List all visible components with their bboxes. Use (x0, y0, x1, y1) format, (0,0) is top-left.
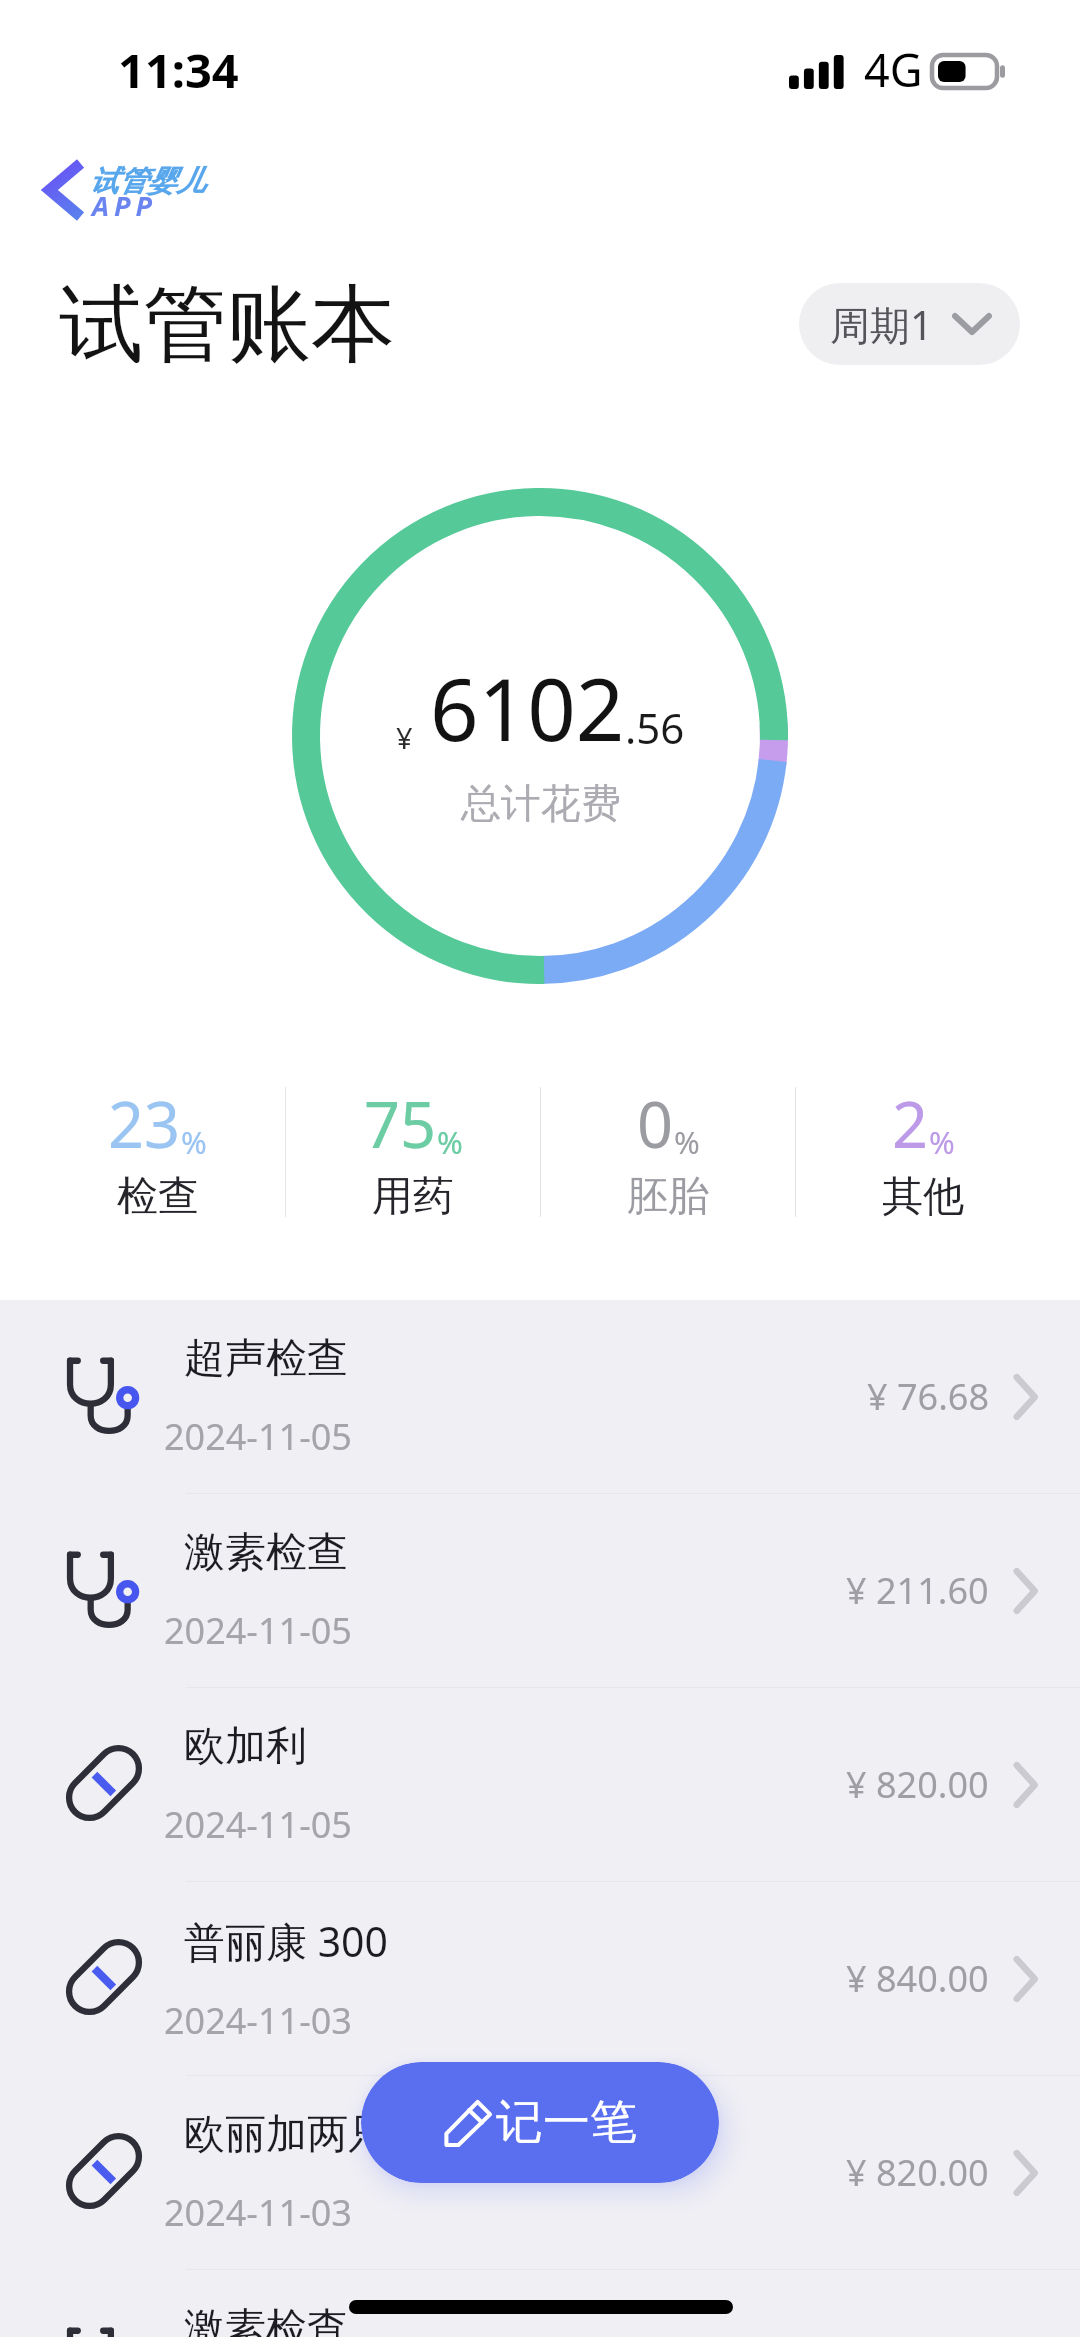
button[interactable]: 记一笔 (361, 2062, 719, 2183)
staticText: 其他 (882, 1171, 964, 1223)
button[interactable]: 0 (541, 1072, 795, 1232)
staticText: ¥ (396, 718, 413, 757)
staticText: 试管账本 (59, 272, 395, 378)
staticText: % (674, 1121, 700, 1163)
button[interactable]: 欧加利 (0, 1688, 1080, 1881)
button[interactable]: 欧丽加两只 (0, 2076, 1080, 2269)
staticText: 2024-11-05 (164, 1412, 352, 1461)
staticText: 2 (892, 1081, 929, 1167)
staticText: 欧丽加两只 (184, 2109, 389, 2161)
staticText: 欧加利 (184, 1721, 307, 1773)
button[interactable]: 75 (286, 1072, 540, 1232)
staticText: 2024-11-03 (164, 1996, 352, 2045)
staticText: 胚胎 (627, 1171, 709, 1223)
staticText: 周期1 (830, 297, 933, 352)
button[interactable]: 23 (30, 1072, 285, 1232)
staticText: 记一笔 (496, 2093, 637, 2152)
button[interactable]: Back (30, 150, 240, 234)
staticText: 2024-11-03 (164, 2188, 352, 2237)
button[interactable]: 激素检查 (0, 1494, 1080, 1687)
staticText: 普丽康 300 (184, 1913, 389, 1969)
staticText: 23 (108, 1081, 181, 1167)
staticText: 超声检查 (184, 1333, 348, 1385)
staticText: 11:34 (118, 38, 239, 102)
staticText: 激素检查 (184, 2303, 348, 2337)
staticText: ¥ 76.68 (867, 1372, 989, 1421)
button[interactable]: 激素检查 (0, 2270, 1080, 2337)
staticText: 2024-11-05 (164, 1606, 352, 1655)
staticText: 激素检查 (184, 1527, 348, 1579)
button[interactable]: 普丽康 300 (0, 1882, 1080, 2075)
staticText: 用药 (372, 1171, 454, 1223)
staticText: 2024-11-05 (164, 1800, 352, 1849)
staticText: 4G (864, 39, 923, 100)
staticText: 6102 (430, 650, 625, 766)
staticText: ¥ 211.60 (846, 1566, 989, 1615)
staticText: 检查 (117, 1171, 199, 1223)
staticText: % (437, 1121, 463, 1163)
staticText: 试管婴儿 (89, 163, 205, 200)
button[interactable]: 超声检查 (0, 1300, 1080, 1493)
staticText: ¥ 820.00 (846, 2148, 989, 2197)
staticText: .56 (625, 699, 685, 756)
staticText: 总计花费 (461, 778, 621, 828)
staticText: 0 (637, 1081, 674, 1167)
button[interactable]: 2 (796, 1072, 1050, 1232)
staticText: ¥ 840.00 (846, 1954, 989, 2003)
staticText: 75 (364, 1081, 437, 1167)
button[interactable]: 周期1 (799, 283, 1020, 365)
staticText: % (181, 1121, 207, 1163)
staticText: % (929, 1121, 955, 1163)
staticText: ¥ 820.00 (846, 1760, 989, 1809)
staticText: APP (92, 187, 157, 224)
